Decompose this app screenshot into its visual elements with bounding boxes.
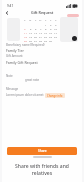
staticText: 25 bbox=[24, 39, 27, 42]
staticText: 30 bbox=[49, 39, 52, 42]
staticText: 15 bbox=[44, 31, 47, 34]
staticText: 23 bbox=[49, 35, 52, 38]
staticText: 1 bbox=[45, 23, 47, 26]
button[interactable]: Status badge bbox=[67, 14, 79, 17]
staticText: 16 bbox=[49, 31, 52, 34]
staticText: 24 bbox=[54, 35, 57, 38]
staticText: Lorem ipsum dolor sit amet bbox=[6, 93, 44, 97]
staticText: Change info bbox=[47, 94, 63, 98]
staticText: great note bbox=[25, 78, 40, 82]
staticText: Beneficiary name (Required) bbox=[6, 43, 45, 47]
staticText: S bbox=[55, 18, 57, 21]
staticText: 26 bbox=[29, 39, 32, 42]
staticText: 4 bbox=[24, 27, 26, 30]
staticText: Gift Request bbox=[31, 10, 54, 15]
staticText: 8 bbox=[45, 27, 47, 30]
staticText: Note bbox=[6, 74, 13, 78]
staticText: 7 bbox=[40, 27, 42, 30]
staticText: Family Gift Request bbox=[6, 60, 38, 65]
staticText: 22 bbox=[44, 35, 47, 38]
button[interactable]: Badge bbox=[72, 36, 77, 41]
staticText: Family Tier bbox=[6, 48, 24, 53]
staticText: 3 bbox=[55, 23, 57, 26]
staticText: 6 bbox=[35, 27, 37, 30]
staticText: 19 bbox=[29, 35, 32, 38]
staticText: 9:41 bbox=[7, 4, 14, 8]
staticText: 21 bbox=[39, 35, 42, 38]
staticText: 14 bbox=[39, 31, 42, 34]
button[interactable]: Back bbox=[2, 8, 11, 17]
staticText: 20 bbox=[34, 35, 37, 38]
staticText: Message bbox=[6, 87, 19, 91]
button[interactable]: Change info bbox=[45, 93, 65, 98]
staticText: 5 bbox=[30, 27, 32, 30]
staticText: W bbox=[39, 18, 42, 21]
staticText: Share with friends and relatives bbox=[14, 163, 70, 176]
staticText: 28 bbox=[39, 39, 42, 42]
staticText: S bbox=[24, 18, 26, 21]
staticText: 11 bbox=[24, 31, 27, 34]
staticText: M bbox=[29, 18, 32, 21]
staticText: 18 bbox=[24, 35, 27, 38]
staticText: 17 bbox=[54, 31, 57, 34]
staticText: 10 bbox=[54, 27, 57, 30]
staticText: 12 bbox=[29, 31, 32, 34]
staticText: 2 bbox=[50, 23, 52, 26]
staticText: T bbox=[35, 18, 37, 21]
staticText: T bbox=[45, 18, 47, 21]
staticText: Gift Amount bbox=[6, 54, 23, 58]
staticText: 27 bbox=[34, 39, 37, 42]
staticText: 29 bbox=[44, 39, 47, 42]
staticText: F bbox=[50, 18, 52, 21]
button[interactable]: Share bbox=[7, 147, 77, 155]
staticText: 9 bbox=[50, 27, 52, 30]
staticText: 13 bbox=[34, 31, 37, 34]
staticText: Share bbox=[38, 149, 47, 153]
